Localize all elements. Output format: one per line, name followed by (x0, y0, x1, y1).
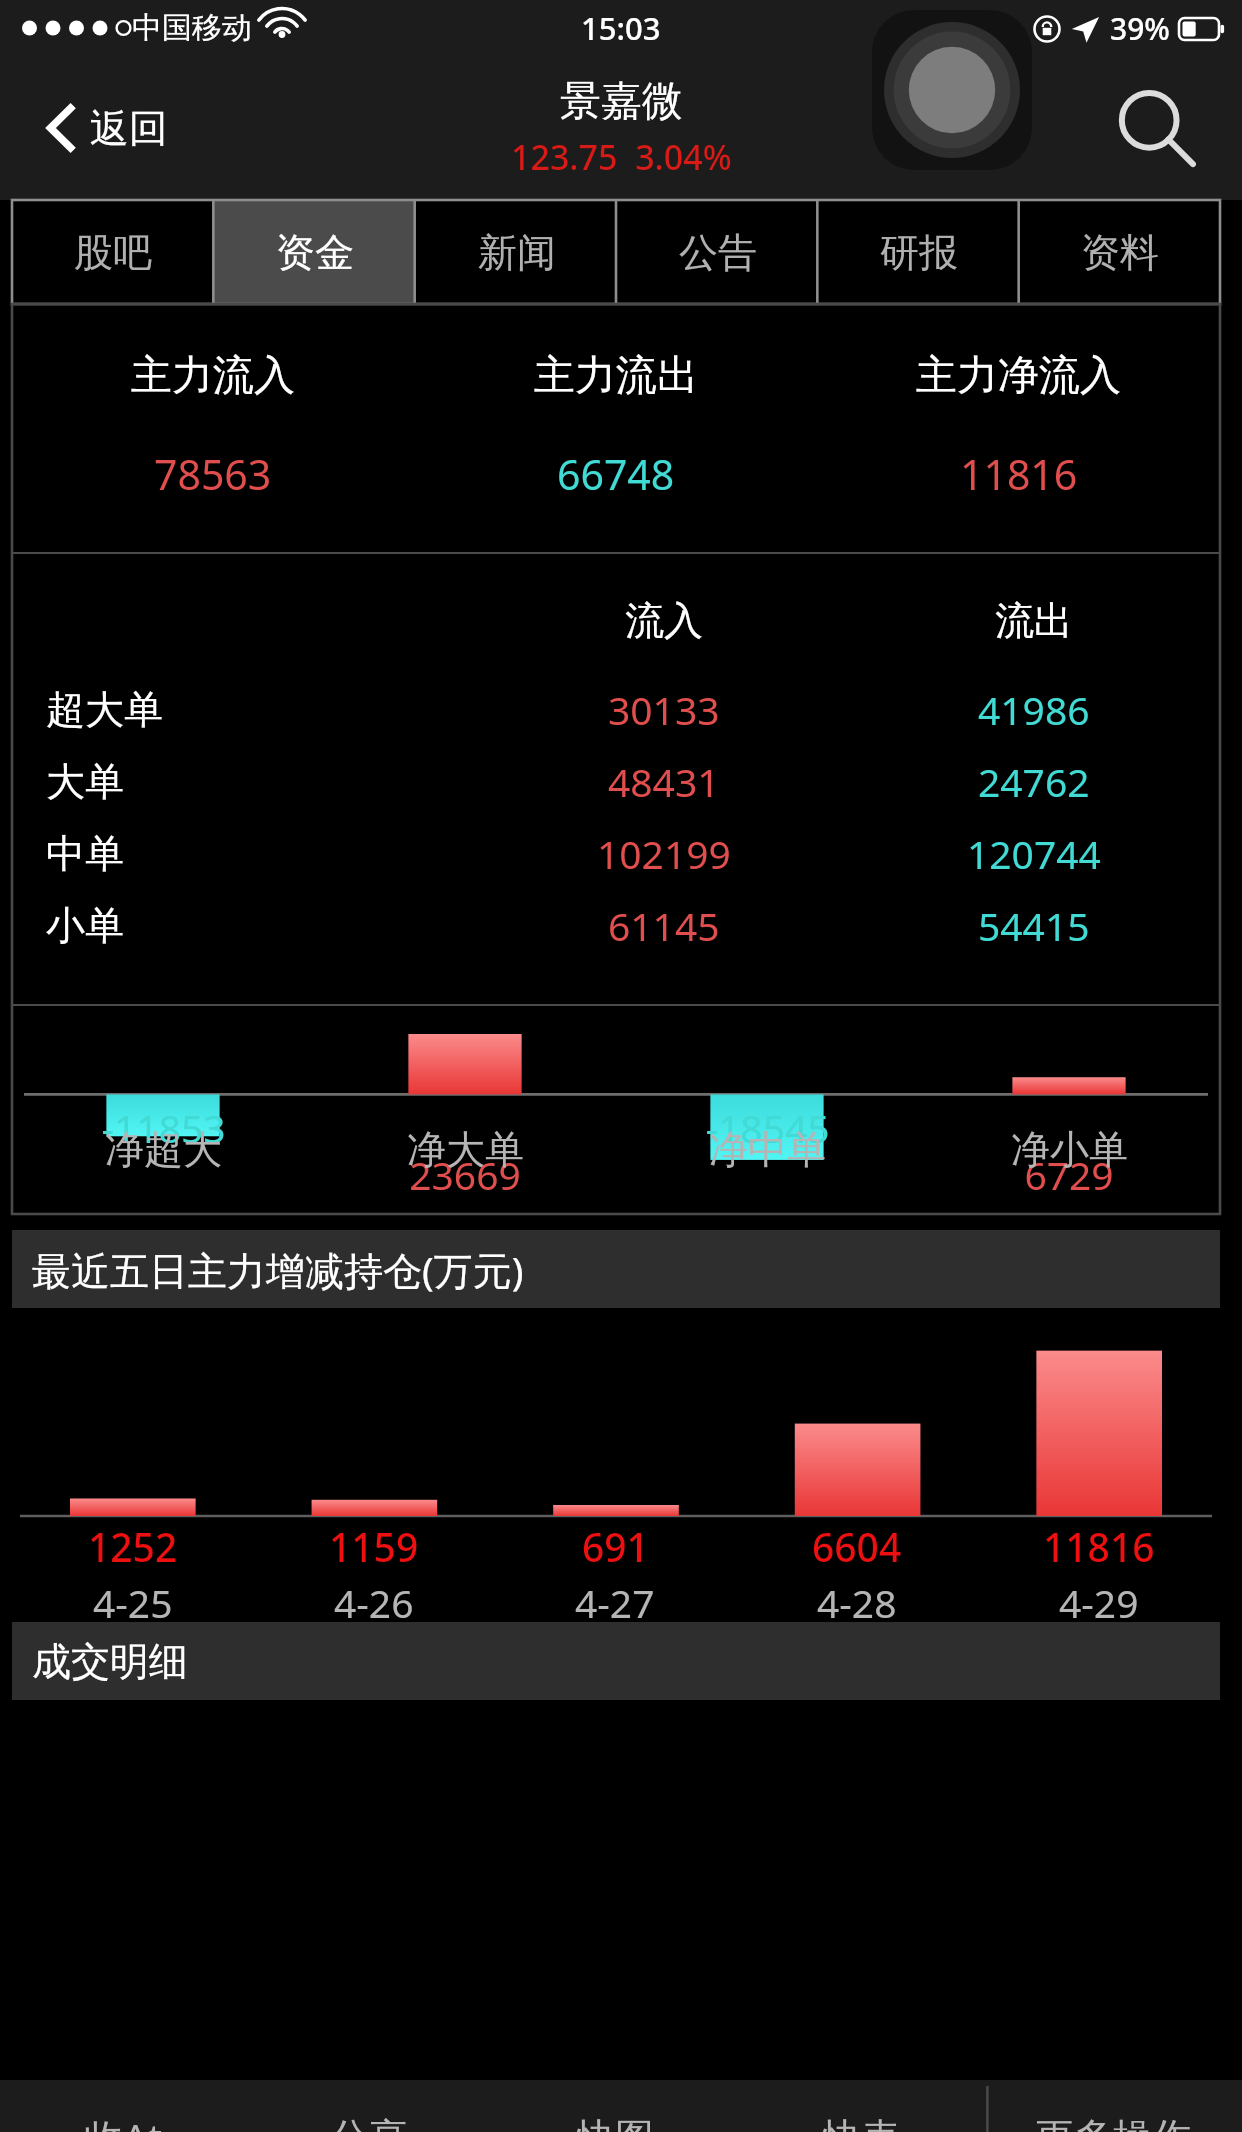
staticText: 净中单 (709, 1125, 826, 1174)
staticText: 120744 (967, 827, 1101, 880)
staticText: 78563 (154, 446, 272, 502)
staticText: 公告 (679, 228, 757, 277)
staticText: 流出 (995, 596, 1073, 645)
staticText: 大单 (46, 757, 124, 806)
staticText: 快表 (822, 2113, 900, 2132)
staticText: 资金 (276, 228, 354, 277)
staticText: 4-29 (1059, 1576, 1139, 1629)
staticText: 11816 (960, 446, 1078, 502)
button[interactable]: 返回 (40, 88, 174, 168)
button[interactable]: 更多操作 (984, 2080, 1242, 2132)
staticText: 中国移动 (132, 9, 252, 47)
staticText: 6604 (812, 1520, 902, 1573)
staticText: 净小单 (1011, 1125, 1128, 1174)
staticText: 小单 (46, 901, 124, 950)
staticText: 返回 (90, 104, 168, 153)
staticText: 4-26 (334, 1576, 414, 1629)
staticText: 超大单 (46, 685, 163, 734)
button[interactable]: Search (1106, 80, 1202, 176)
staticText: 102199 (597, 827, 731, 880)
button[interactable]: 新闻 (416, 200, 617, 304)
staticText: 41986 (978, 683, 1090, 736)
button[interactable]: 公告 (617, 200, 818, 304)
staticText: 中单 (46, 829, 124, 878)
staticText: 15:03 (581, 7, 661, 49)
staticText: 资料 (1081, 228, 1159, 277)
staticText: -11853 (101, 1101, 226, 1154)
staticText: 1252 (88, 1520, 178, 1573)
staticText: 主力净流入 (916, 350, 1121, 402)
staticText: 最近五日主力增减持仓(万元) (32, 1243, 524, 1296)
button[interactable]: 成交明细 (12, 1622, 1220, 1700)
staticText: 股吧 (74, 228, 152, 277)
staticText: 收At (84, 2110, 163, 2132)
button[interactable]: 分享 (246, 2080, 492, 2132)
staticText: 123.75 3.04% (511, 134, 732, 180)
button[interactable]: 资料 (1019, 200, 1220, 304)
button[interactable]: AssistiveTouch (872, 10, 1032, 170)
staticText: 24762 (978, 755, 1090, 808)
staticText: 流入 (625, 596, 703, 645)
staticText: 4-28 (817, 1576, 897, 1629)
staticText: 主力流入 (131, 350, 295, 402)
staticText: 30133 (608, 683, 720, 736)
staticText: 分享 (330, 2113, 408, 2132)
staticText: 新闻 (478, 228, 556, 277)
staticText: -18545 (705, 1101, 830, 1154)
button[interactable]: 股吧 (12, 200, 214, 304)
staticText: 成交明细 (32, 1637, 188, 1686)
staticText: 快图 (576, 2113, 654, 2132)
staticText: 48431 (608, 755, 720, 808)
staticText: 691 (582, 1520, 649, 1573)
staticText: 4-27 (575, 1576, 655, 1629)
staticText: 54415 (978, 899, 1090, 952)
staticText: 净大单 (407, 1125, 524, 1174)
staticText: 4-25 (93, 1576, 173, 1629)
staticText: 景嘉微 (560, 76, 683, 128)
staticText: 39% (1110, 8, 1170, 49)
button[interactable]: 快图 (492, 2080, 738, 2132)
staticText: 1159 (329, 1520, 419, 1573)
staticText: 主力流出 (534, 350, 698, 402)
button[interactable]: 收At (0, 2080, 246, 2132)
staticText: 研报 (880, 228, 958, 277)
staticText: 净超大 (105, 1125, 222, 1174)
staticText: 66748 (557, 446, 675, 502)
button[interactable]: 研报 (818, 200, 1019, 304)
button[interactable]: 快表 (738, 2080, 984, 2132)
staticText: 61145 (608, 899, 720, 952)
staticText: 23669 (409, 1148, 521, 1201)
staticText: 更多操作 (1035, 2113, 1191, 2132)
staticText: 6729 (1024, 1148, 1114, 1201)
staticText: 11816 (1043, 1520, 1155, 1573)
button[interactable]: 资金 (214, 200, 416, 304)
